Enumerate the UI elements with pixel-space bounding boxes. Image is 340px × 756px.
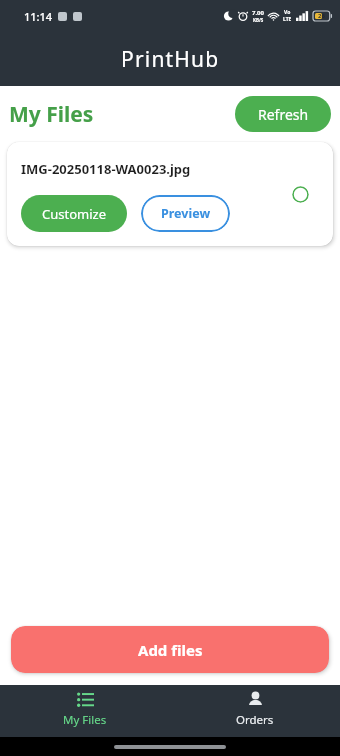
staticText: Refresh: [258, 105, 309, 124]
staticText: KB/S: [253, 17, 264, 23]
staticText: PrintHub: [121, 45, 220, 74]
button[interactable]: Select file: [7, 142, 333, 246]
staticText: My Files: [63, 712, 107, 728]
button[interactable]: Refresh: [235, 96, 331, 132]
staticText: 11:14: [24, 9, 53, 24]
button[interactable]: Customize: [21, 195, 127, 232]
staticText: Orders: [236, 712, 274, 728]
button[interactable]: Preview: [141, 195, 230, 232]
staticText: Customize: [42, 205, 106, 223]
staticText: Add files: [138, 640, 203, 660]
button[interactable]: Select file: [292, 186, 309, 203]
staticText: IMG-20250118-WA0023.jpg: [21, 160, 191, 178]
staticText: Preview: [161, 205, 211, 222]
staticText: LTE: [283, 16, 292, 23]
staticText: 26: [318, 12, 325, 20]
staticText: 7.00: [252, 9, 264, 17]
staticText: Vo: [284, 9, 291, 16]
button[interactable]: Add files: [11, 626, 329, 673]
button[interactable]: Orders: [170, 685, 340, 737]
button[interactable]: My Files: [0, 685, 170, 737]
staticText: My Files: [9, 100, 94, 129]
